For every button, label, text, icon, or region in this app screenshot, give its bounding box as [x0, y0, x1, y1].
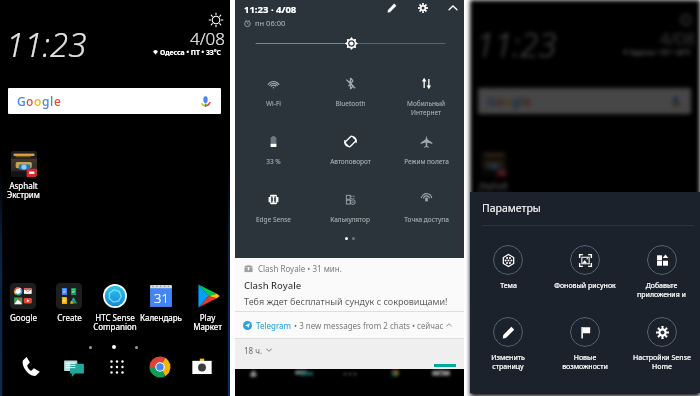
staticText: Edge Sense	[256, 215, 291, 224]
staticText: Play Маркет	[193, 312, 222, 333]
button[interactable]: Asphalt Экстрим	[470, 151, 517, 201]
staticText: Google	[480, 312, 507, 323]
staticText: Clash Royale • 31 мин.	[258, 263, 342, 274]
staticText: Добавьте приложения и	[637, 281, 686, 299]
button[interactable]: Мобильный Интернет	[388, 77, 464, 135]
staticText: 18 ч.	[244, 345, 263, 356]
button[interactable]: Asphalt Экстрим	[0, 151, 47, 201]
button[interactable]: Settings	[415, 0, 430, 15]
button[interactable]: HTC Sense Companion	[562, 283, 608, 333]
staticText: e	[524, 93, 531, 109]
button[interactable]: Edit	[384, 0, 399, 15]
button[interactable]: Edge Sense	[235, 193, 312, 237]
button[interactable]: Точка доступа	[388, 193, 464, 237]
staticText: Мобильный Интернет	[407, 99, 445, 117]
staticText: l	[50, 93, 54, 109]
button[interactable]: Create	[516, 283, 562, 323]
button[interactable]: Калькулятор	[312, 193, 388, 237]
button[interactable]: Новые возможности	[546, 317, 623, 371]
staticText: Одесса • ПТ • 33°C	[160, 48, 221, 57]
staticText: Режим полета	[404, 157, 449, 166]
staticText: HTC Sense Companion	[93, 312, 137, 333]
staticText: • 3 new messages from 2 chats • сейчас	[292, 320, 446, 331]
staticText: G	[487, 93, 496, 109]
staticText: G	[17, 93, 26, 109]
button[interactable]: All apps	[95, 353, 138, 380]
button[interactable]: Create	[46, 283, 92, 323]
button[interactable]: Play Маркет	[654, 283, 700, 333]
staticText: Play Маркет	[663, 312, 692, 333]
staticText: e	[54, 93, 61, 109]
staticText: Bluetooth	[335, 99, 366, 108]
staticText: Тема	[500, 281, 517, 291]
staticText: 11:23	[6, 22, 87, 67]
button[interactable]: Автоповорот	[312, 135, 388, 193]
staticText: HTC Sense Companion	[563, 312, 607, 333]
staticText: Калькулятор	[330, 215, 370, 224]
staticText: 33 %	[266, 157, 281, 166]
button[interactable]: Chrome	[608, 353, 651, 380]
staticText: 4/08	[190, 27, 226, 50]
button[interactable]: HTC Sense Companion	[92, 283, 138, 333]
staticText: l	[520, 93, 524, 109]
button[interactable]: Режим полета	[388, 135, 464, 193]
button[interactable]: Настройки Sense Home	[623, 317, 700, 371]
button[interactable]: Telegram	[235, 312, 464, 338]
staticText: o	[496, 93, 504, 109]
staticText: Asphalt Экстрим	[477, 180, 510, 201]
staticText: Точка доступа	[404, 215, 449, 224]
button[interactable]: Collapse	[445, 0, 460, 15]
button[interactable]: Тема	[470, 245, 546, 291]
staticText: Create	[57, 312, 82, 323]
staticText: o	[504, 93, 512, 109]
button[interactable]: 33 %	[235, 135, 312, 193]
staticText: g	[42, 93, 50, 109]
button[interactable]: G	[478, 88, 691, 114]
staticText: 4/08	[660, 27, 696, 50]
staticText: Фоновый рисунок	[554, 281, 616, 291]
button[interactable]: G	[8, 88, 221, 114]
button[interactable]: Bluetooth	[312, 77, 388, 135]
staticText: 31	[154, 289, 169, 307]
button[interactable]: Play Маркет	[184, 283, 230, 333]
staticText: Календарь	[140, 312, 182, 323]
button[interactable]: Phone	[9, 353, 52, 380]
button[interactable]: Google	[470, 283, 516, 323]
button[interactable]: Camera	[651, 353, 692, 380]
staticText: Одесса • ПТ • 33°C	[630, 48, 691, 57]
button[interactable]: Wi-Fi	[235, 77, 312, 135]
staticText: Wi-Fi	[266, 99, 281, 108]
button[interactable]: Chrome	[138, 353, 181, 380]
staticText: o	[34, 93, 42, 109]
staticText: Изменить страницу	[491, 353, 525, 371]
staticText: Параметры	[482, 201, 541, 215]
staticText: Новые возможности	[562, 353, 608, 371]
staticText: Автоповорот	[330, 157, 371, 166]
staticText: Тебя ждет бесплатный сундук с сокровищам…	[244, 295, 448, 307]
button[interactable]: Messages	[52, 353, 95, 380]
staticText: 11:23	[476, 22, 557, 67]
button[interactable]: 18 ч.	[235, 339, 281, 361]
button[interactable]: Добавьте приложения и	[623, 245, 700, 299]
staticText: 11:23 · 4/08	[244, 3, 297, 16]
button[interactable]: All apps	[565, 353, 608, 380]
staticText: o	[26, 93, 34, 109]
button[interactable]: Clash Royale • 31 мин.	[235, 258, 464, 311]
button[interactable]: 31	[608, 283, 654, 323]
button[interactable]: Google	[0, 283, 46, 323]
staticText: Telegram	[256, 320, 292, 331]
button[interactable]: Phone	[479, 353, 522, 380]
button[interactable]: Camera	[181, 353, 222, 380]
staticText: Clash Royale	[244, 279, 302, 292]
staticText: Asphalt Экстрим	[7, 180, 40, 201]
staticText: 31	[624, 289, 639, 307]
staticText: g	[512, 93, 520, 109]
staticText: пн 06:00	[255, 18, 286, 28]
button[interactable]: Изменить страницу	[470, 317, 546, 371]
button[interactable]: Фоновый рисунок	[546, 245, 623, 291]
staticText: Google	[10, 312, 37, 323]
button[interactable]: 31	[138, 283, 184, 323]
button[interactable]: Messages	[522, 353, 565, 380]
